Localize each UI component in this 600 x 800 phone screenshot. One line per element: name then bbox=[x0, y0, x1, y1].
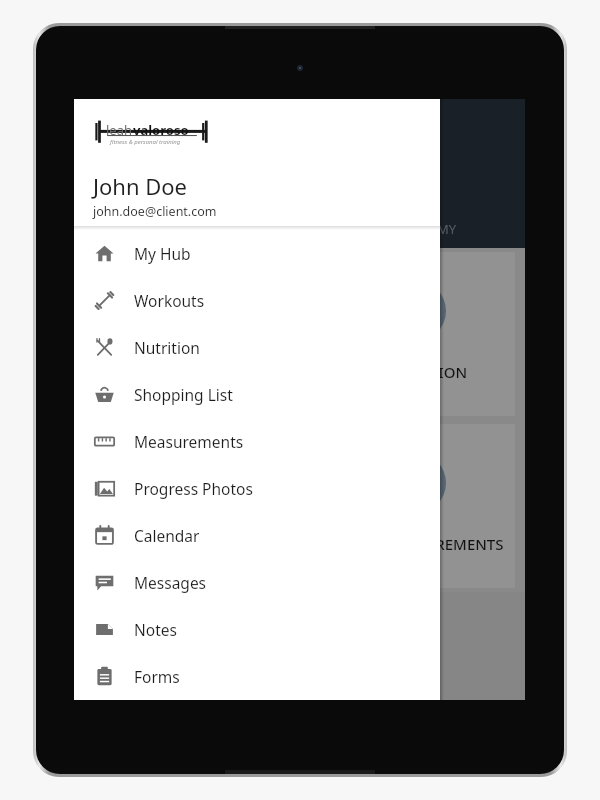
button[interactable]: Measurements bbox=[74, 418, 440, 465]
staticText: John Doe bbox=[93, 171, 188, 201]
button[interactable]: Workouts bbox=[74, 277, 440, 324]
button[interactable]: Progress Photos bbox=[74, 465, 440, 512]
button[interactable]: Calendar bbox=[74, 512, 440, 559]
button[interactable]: Notes bbox=[74, 606, 440, 653]
button[interactable]: My Hub bbox=[74, 230, 440, 277]
staticText: Progress Photos bbox=[134, 478, 253, 499]
staticText: Forms bbox=[134, 666, 180, 687]
button[interactable]: Nutrition bbox=[74, 324, 440, 371]
staticText: Workouts bbox=[134, 290, 205, 311]
staticText: MEASUREMENTS bbox=[384, 534, 504, 554]
staticText: john.doe@client.com bbox=[93, 203, 217, 220]
staticText: Shopping List bbox=[134, 384, 233, 405]
staticText: NUTRITION bbox=[384, 362, 468, 382]
staticText: Notes bbox=[134, 619, 177, 640]
staticText: leah bbox=[106, 121, 133, 139]
staticText: My Hub bbox=[134, 243, 191, 264]
staticText: Calendar bbox=[134, 525, 200, 546]
button[interactable]: Forms bbox=[74, 653, 440, 700]
staticText: Messages bbox=[134, 572, 207, 593]
button[interactable]: Shopping List bbox=[74, 371, 440, 418]
staticText: Nutrition bbox=[134, 337, 200, 358]
button[interactable]: Messages bbox=[74, 559, 440, 606]
staticText: fitness & personal training bbox=[110, 138, 181, 146]
staticText: MY bbox=[437, 220, 457, 238]
staticText: valoroso bbox=[133, 121, 189, 139]
staticText: Measurements bbox=[134, 431, 244, 452]
